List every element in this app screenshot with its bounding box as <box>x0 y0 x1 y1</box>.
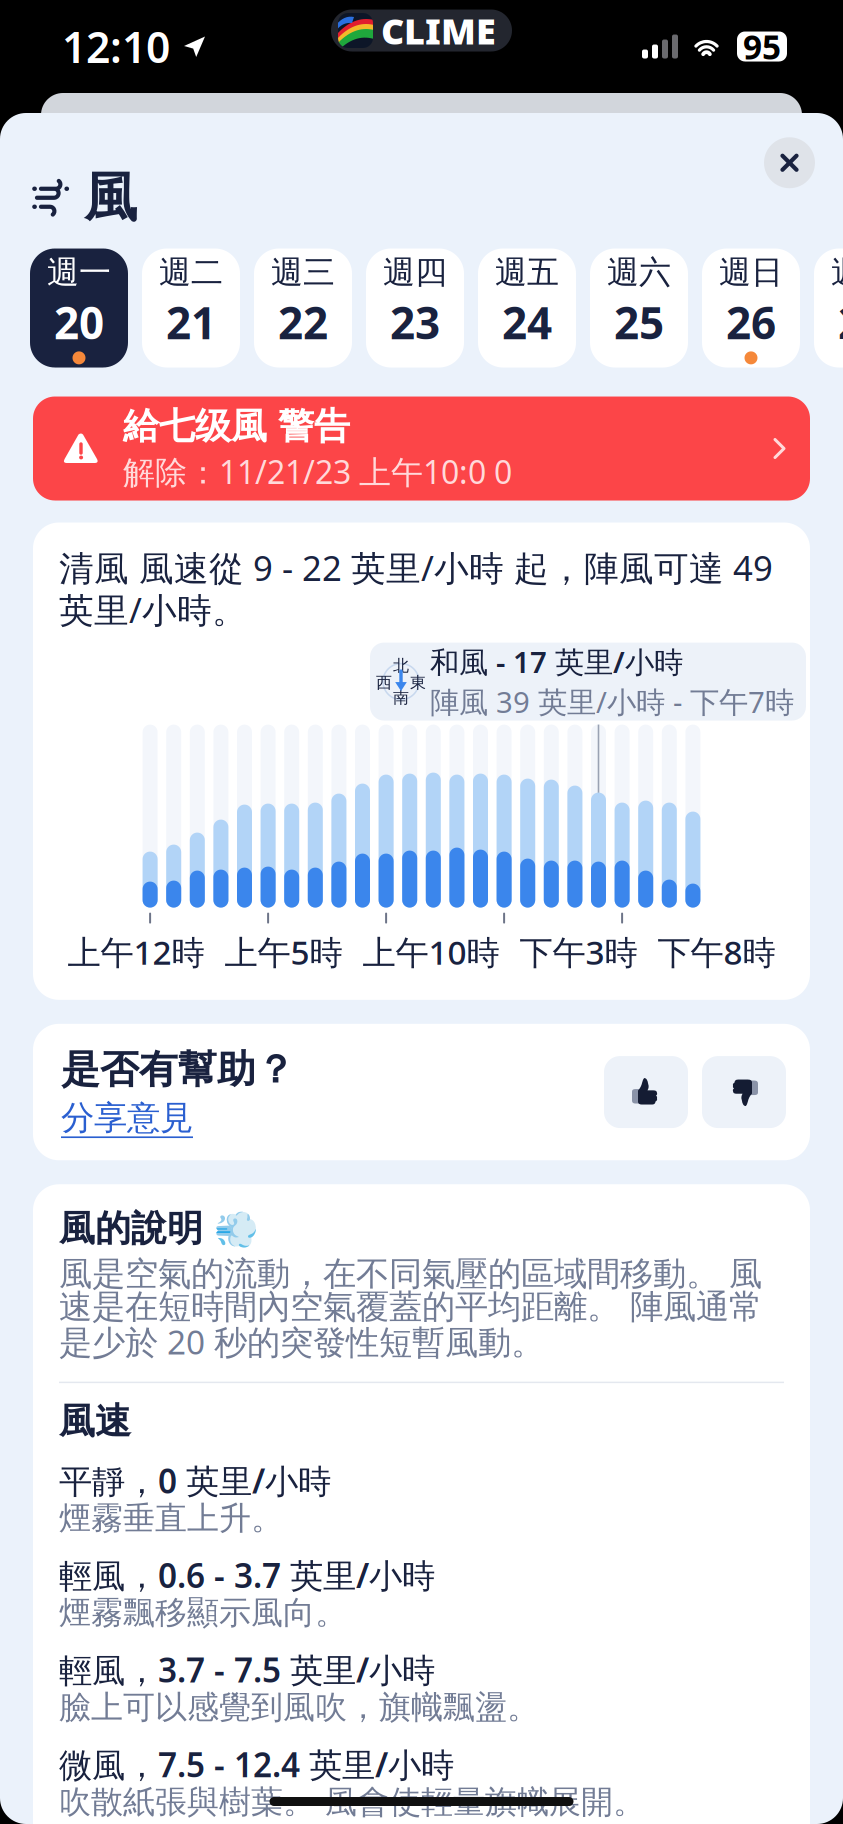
staticText: 風速 <box>59 1399 131 1443</box>
button[interactable]: Close <box>764 137 815 188</box>
staticText: 12:10 <box>62 18 170 75</box>
staticText: 解除：11/21/23 上午10:0 0 <box>123 450 512 493</box>
staticText: 週四 <box>383 253 447 292</box>
staticText: 輕風，3.7 - 7.5 英里/小時 <box>59 1647 435 1692</box>
staticText: 臉上可以感覺到風吹，旗幟飄盪。 <box>59 1688 539 1727</box>
staticText: 週五 <box>495 253 559 292</box>
staticText: 北 <box>393 656 409 675</box>
staticText: 下午3時 <box>519 930 637 974</box>
button[interactable]: Not helpful <box>702 1056 786 1128</box>
staticText: 週六 <box>607 253 671 292</box>
staticText: 22 <box>278 293 328 351</box>
button[interactable]: 週五 <box>478 248 576 367</box>
staticText: 95 <box>743 24 781 69</box>
staticText: 陣風 39 英里/小時 - 下午7時 <box>430 682 794 721</box>
staticText: 煙霧飄移顯示風向。 <box>59 1593 347 1632</box>
staticText: 下午8時 <box>657 930 775 974</box>
staticText: 東 <box>410 673 426 692</box>
staticText: 和風 - 17 英里/小時 <box>430 642 683 681</box>
staticText: 上午5時 <box>224 930 342 974</box>
staticText: 上午12時 <box>67 930 204 974</box>
staticText: 21 <box>166 293 216 351</box>
button[interactable]: 分享意見 <box>61 1093 193 1138</box>
staticText: 週一 <box>47 253 111 292</box>
staticText: 風是空氣的流動，在不同氣壓的區域間移動。 風速是在短時間內空氣覆蓋的平均距離。 … <box>59 1253 762 1364</box>
staticText: 微風，7.5 - 12.4 英里/小時 <box>59 1742 454 1786</box>
button[interactable]: 週日 <box>702 248 800 367</box>
staticText: 平靜，0 英里/小時 <box>59 1458 331 1503</box>
button[interactable]: 週一 <box>30 248 128 367</box>
button[interactable]: 給七级風 警告 <box>33 396 810 500</box>
staticText: 分享意見 <box>61 1097 193 1138</box>
staticText: 週三 <box>271 253 335 292</box>
staticText: 27 <box>838 293 843 351</box>
staticText: 南 <box>393 688 409 707</box>
staticText: 23 <box>390 293 440 351</box>
staticText: 25 <box>614 293 664 351</box>
button[interactable]: Helpful <box>604 1056 688 1128</box>
button[interactable]: 週六 <box>590 248 688 367</box>
staticText: 吹散紙張與樹葉。 風會使輕量旗幟展開。 <box>59 1782 645 1822</box>
staticText: CLIME <box>381 7 496 54</box>
button[interactable]: 週二 <box>142 248 240 367</box>
staticText: 週日 <box>719 253 783 292</box>
staticText: 是否有幫助？ <box>61 1046 295 1093</box>
staticText: 上午10時 <box>362 930 499 974</box>
staticText: 清風 風速從 9 - 22 英里/小時 起，陣風可達 49 英里/小時。 <box>59 544 773 633</box>
button[interactable]: 週三 <box>254 248 352 367</box>
staticText: 煙霧垂直上升。 <box>59 1499 283 1538</box>
staticText: 輕風，0.6 - 3.7 英里/小時 <box>59 1553 435 1597</box>
staticText: 風 <box>84 165 137 230</box>
button[interactable]: 週一 <box>814 248 843 367</box>
staticText: 26 <box>726 293 776 351</box>
staticText: 20 <box>54 293 104 351</box>
staticText: 風的說明 💨 <box>59 1206 259 1250</box>
staticText: 24 <box>502 293 552 351</box>
staticText: 給七级風 警告 <box>123 404 350 448</box>
button[interactable]: 週四 <box>366 248 464 367</box>
staticText: 週一 <box>831 253 843 292</box>
staticText: 週二 <box>159 253 223 292</box>
staticText: 西 <box>376 673 392 692</box>
